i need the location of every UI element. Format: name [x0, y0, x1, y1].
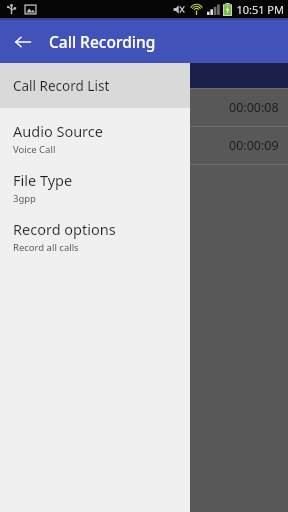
button[interactable]: Audio Source: [0, 119, 190, 159]
staticText: Call Record List: [13, 77, 110, 95]
staticText: Record options: [13, 219, 116, 239]
button[interactable]: Call Record List: [0, 63, 190, 108]
staticText: 3gpp: [13, 192, 36, 205]
button[interactable]: 00:00:09: [0, 127, 288, 164]
button[interactable]: Record options: [0, 217, 190, 257]
staticText: 10:51 PM: [236, 2, 284, 17]
staticText: 00:00:08: [229, 99, 279, 116]
staticText: File Type: [13, 170, 73, 190]
button[interactable]: File Type: [0, 168, 190, 208]
staticText: Call Recording: [49, 31, 156, 52]
staticText: Record all calls: [13, 241, 79, 254]
button[interactable]: Back: [8, 27, 38, 57]
staticText: Audio Source: [13, 121, 103, 141]
button[interactable]: 00:00:08: [0, 89, 288, 126]
staticText: 00:00:09: [229, 137, 279, 154]
staticText: Voice Call: [13, 143, 56, 156]
